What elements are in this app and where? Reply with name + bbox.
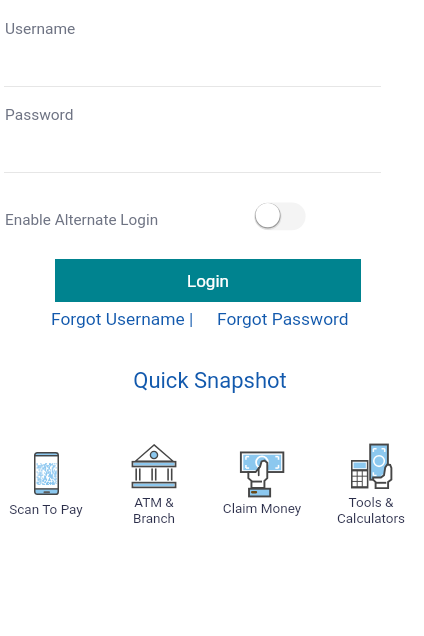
button[interactable]: Tools & Calculators [317,436,424,528]
staticText: ATM & Branch [100,494,208,526]
staticText: Enable Alternate Login [5,211,159,229]
button[interactable]: Login [55,259,361,302]
staticText: Password [5,106,74,124]
staticText: Username [5,20,76,38]
button[interactable]: Forgot Password [217,309,349,329]
button[interactable]: Enable Alternate Login toggle [251,198,311,234]
staticText: Quick Snapshot [0,368,422,394]
staticText: Login [187,271,229,291]
button[interactable]: Scan To Pay [0,444,100,536]
staticText: Scan To Pay [0,501,100,517]
button[interactable]: Forgot Username | [51,309,194,329]
staticText: Tools & Calculators [317,494,424,526]
button[interactable]: ATM & Branch [100,436,208,528]
staticText: Claim Money [208,500,316,516]
staticText: Forgot Password [217,309,349,329]
staticText: Forgot Username | [51,309,194,329]
button[interactable]: Claim Money [208,444,316,536]
